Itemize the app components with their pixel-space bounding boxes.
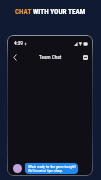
button[interactable]: Video call (80, 52, 91, 63)
staticText: CHAT (15, 7, 33, 15)
button[interactable]: Back (9, 52, 20, 63)
staticText: 4:39 (14, 41, 23, 46)
staticText: WITH YOUR TEAM (33, 7, 86, 15)
staticText: Who's ready for the game tonight? We'll … (28, 165, 76, 173)
staticText: Team Chat (39, 55, 62, 60)
